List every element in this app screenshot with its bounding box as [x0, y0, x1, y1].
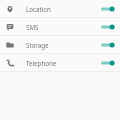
button[interactable]: Location permission toggle, on — [99, 2, 117, 16]
staticText: SMS — [26, 23, 99, 31]
button[interactable]: Storage — [0, 36, 120, 53]
button[interactable]: Telephone permission toggle, on — [99, 56, 117, 70]
button[interactable]: Location — [0, 0, 120, 17]
staticText: Location — [26, 5, 99, 13]
staticText: Telephone — [26, 59, 99, 67]
button[interactable]: SMS — [0, 18, 120, 35]
button[interactable]: Storage permission toggle, on — [99, 38, 117, 52]
button[interactable]: Telephone — [0, 54, 120, 71]
staticText: Storage — [26, 41, 99, 49]
button[interactable]: SMS permission toggle, on — [99, 20, 117, 34]
